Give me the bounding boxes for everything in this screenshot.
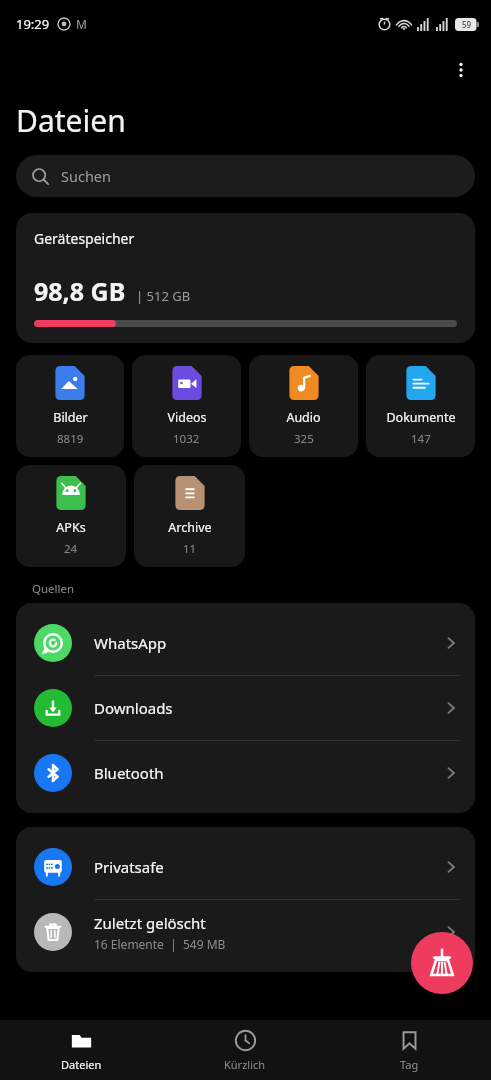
staticText: Audio [286,409,321,426]
staticText: 11 [183,541,197,557]
staticText: Tag [400,1057,419,1072]
button[interactable]: Gerätespeicher [16,213,475,343]
button[interactable]: Archive [134,465,245,567]
staticText: Privatsafe [94,857,164,877]
staticText: 24 [64,541,78,557]
button[interactable]: WhatsApp [16,611,475,676]
staticText: Bilder [53,409,88,426]
staticText: Gerätespeicher [34,229,135,248]
staticText: 325 [294,431,314,447]
button[interactable]: Dateien [0,1020,163,1080]
staticText: Archive [168,519,212,536]
staticText: Suchen [61,166,111,186]
staticText: APKs [56,519,86,536]
button[interactable]: Clean up storage [411,932,473,994]
staticText: Downloads [94,698,173,718]
button[interactable]: Bilder [16,355,124,457]
staticText: Videos [167,409,207,426]
button[interactable]: Suchen [16,155,475,197]
staticText: Dateien [61,1057,102,1072]
staticText: M [76,16,87,32]
button[interactable]: Videos [132,355,241,457]
button[interactable]: Downloads [16,676,475,741]
button[interactable]: Audio [249,355,358,457]
button[interactable]: APKs [16,465,126,567]
button[interactable]: Kürzlich [163,1020,327,1080]
button[interactable]: Bluetooth [16,741,475,805]
button[interactable]: Tag [327,1020,491,1080]
staticText: WhatsApp [94,633,167,653]
staticText: Dokumente [386,409,456,426]
staticText: 16 Elemente | 549 MB [94,936,226,952]
staticText: 8819 [57,431,84,447]
staticText: 1032 [173,431,200,447]
button[interactable]: Dokumente [366,355,475,457]
button[interactable]: Privatsafe [16,835,475,900]
staticText: 59 [462,19,472,30]
staticText: | 512 GB [136,287,191,305]
staticText: 147 [411,431,431,447]
staticText: 98,8 GB [34,274,126,308]
button[interactable]: Zuletzt gelöscht [16,900,475,964]
staticText: Quellen [32,581,75,597]
staticText: Bluetooth [94,763,164,783]
staticText: Dateien [16,100,126,141]
staticText: Kürzlich [224,1057,266,1072]
staticText: 19:29 [16,15,50,33]
staticText: Zuletzt gelöscht [94,913,206,933]
button[interactable]: More options [441,50,481,90]
